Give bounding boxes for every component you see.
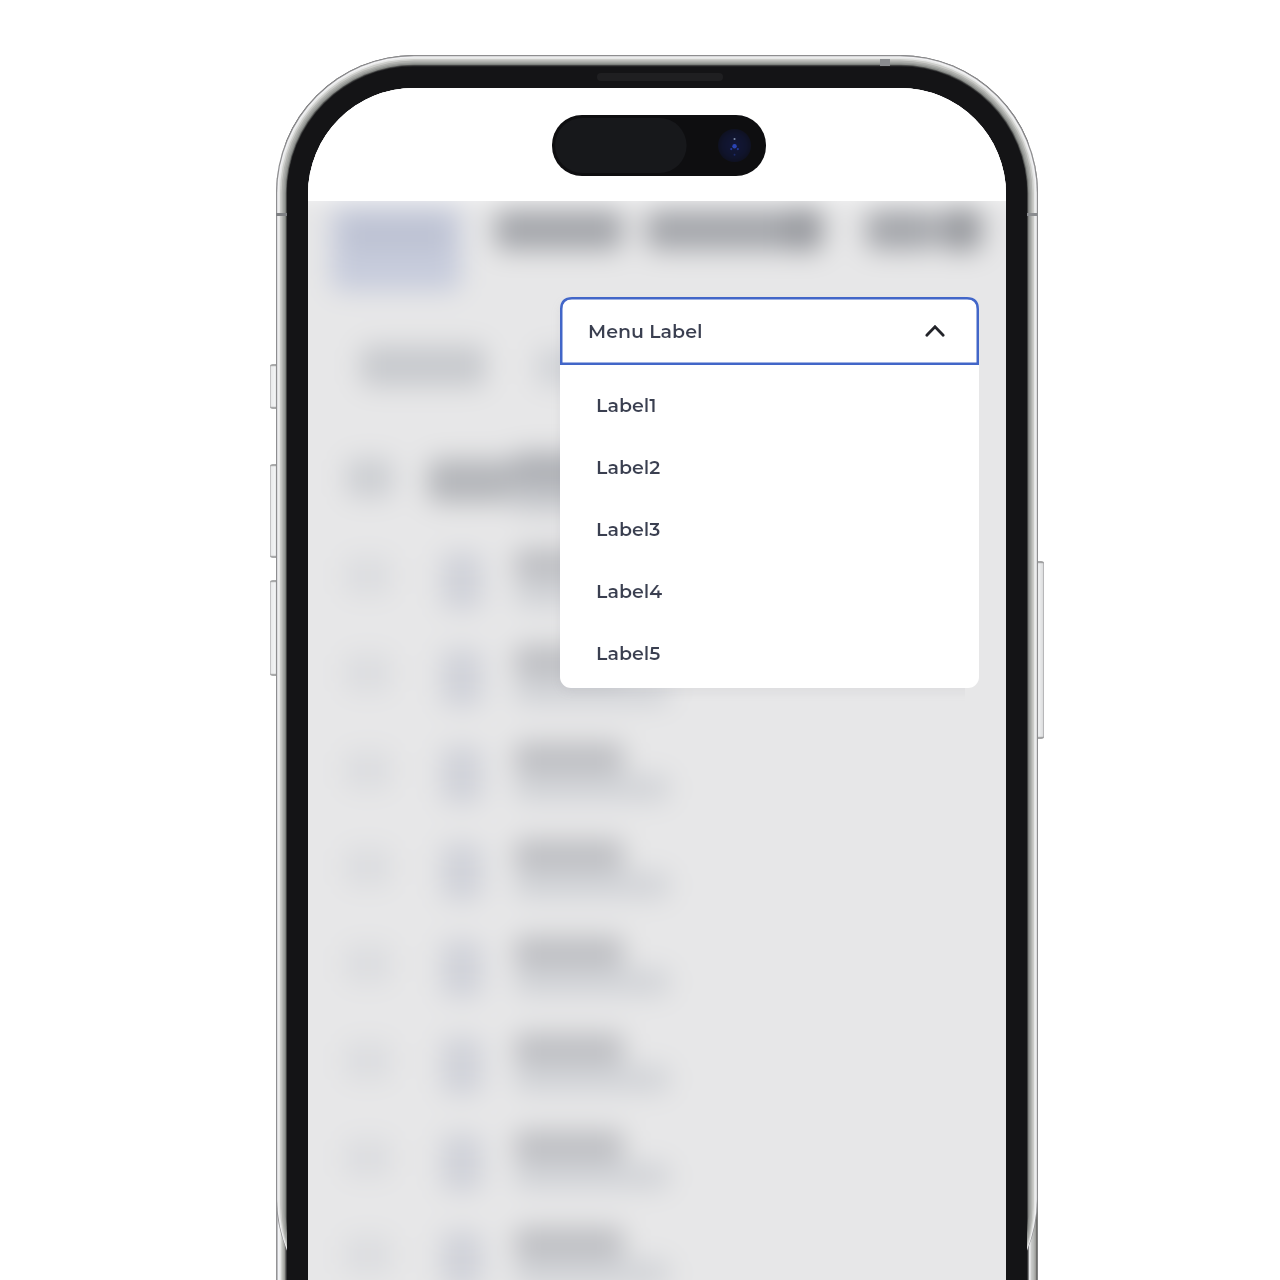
other: Volume button [270, 580, 280, 676]
other: Collapse menu [917, 313, 953, 349]
button[interactable]: Label5 [560, 622, 979, 684]
staticText: Label3 [596, 518, 661, 541]
staticText: Label5 [596, 642, 661, 665]
staticText: Label1 [596, 394, 657, 417]
staticText: Label2 [596, 456, 661, 479]
button[interactable]: Label1 [560, 374, 979, 436]
other: Volume button [270, 464, 280, 558]
staticText: Menu Label [588, 320, 703, 343]
button[interactable]: Label4 [560, 560, 979, 622]
other: Power button [1034, 561, 1044, 739]
staticText: Label4 [596, 580, 663, 603]
other: Volume button [270, 364, 280, 409]
button[interactable]: Menu Label [560, 297, 979, 365]
button[interactable]: Label3 [560, 498, 979, 560]
button[interactable]: Label2 [560, 436, 979, 498]
